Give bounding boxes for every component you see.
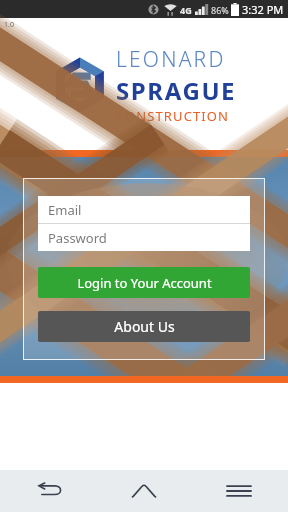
button[interactable]: Home xyxy=(99,470,189,512)
button[interactable]: Email xyxy=(38,196,250,223)
staticText: 1.0 xyxy=(4,20,14,30)
staticText: 86% xyxy=(211,4,229,16)
staticText: Password xyxy=(48,229,107,247)
staticText: 4G xyxy=(180,4,192,16)
button[interactable]: Back xyxy=(5,470,95,512)
button[interactable]: About Us xyxy=(38,311,250,342)
button[interactable]: Login to Your Account xyxy=(38,267,250,298)
staticText: SPRAGUE xyxy=(116,74,237,107)
staticText: Login to Your Account xyxy=(77,274,212,292)
staticText: LEONARD xyxy=(116,45,226,74)
staticText: 3:32 PM xyxy=(242,2,284,17)
staticText: Email xyxy=(48,201,82,219)
button[interactable]: Recent apps xyxy=(194,470,284,512)
staticText: About Us xyxy=(114,317,175,336)
staticText: CONSTRUCTION xyxy=(116,107,230,125)
button[interactable]: Password xyxy=(38,224,250,251)
